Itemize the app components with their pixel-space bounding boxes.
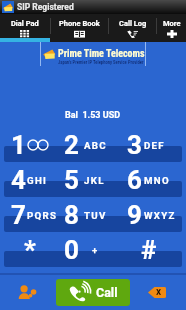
staticText: 5 xyxy=(64,165,79,195)
staticText: Call Log xyxy=(119,19,147,28)
button[interactable]: 4 xyxy=(0,162,62,197)
staticText: 6 xyxy=(127,165,142,195)
staticText: * xyxy=(24,235,36,265)
button[interactable]: Phone Book xyxy=(51,14,108,38)
button[interactable]: Delete xyxy=(144,281,170,303)
staticText: Japan's Premier IP Telephony Service Pro… xyxy=(58,60,144,65)
staticText: + xyxy=(92,245,99,256)
staticText: MNO xyxy=(144,175,170,186)
button[interactable]: 0 xyxy=(62,232,124,267)
staticText: JKL xyxy=(84,175,105,186)
staticText: Phone Book xyxy=(59,19,100,28)
staticText: TUV xyxy=(84,210,107,221)
staticText: Dial Pad xyxy=(11,19,39,28)
staticText: 4 xyxy=(11,165,26,195)
staticText: DEF xyxy=(144,140,165,151)
staticText: PQRS xyxy=(27,210,58,221)
button[interactable]: 7 xyxy=(0,197,62,232)
button[interactable]: Add contact xyxy=(14,281,40,303)
button[interactable]: 2 xyxy=(62,127,124,162)
staticText: Bal 1.53 USD xyxy=(65,110,121,121)
staticText: ABC xyxy=(84,140,107,151)
staticText: 7 xyxy=(11,200,26,230)
staticText: Prime Time Telecoms xyxy=(58,48,145,60)
staticText: # xyxy=(141,235,157,265)
button[interactable]: Call xyxy=(56,279,130,306)
staticText: Call xyxy=(96,285,118,300)
staticText: 3 xyxy=(127,130,142,160)
staticText: 1 xyxy=(11,130,26,160)
staticText: WXYZ xyxy=(144,210,176,221)
button[interactable]: 5 xyxy=(62,162,124,197)
staticText: GHI xyxy=(27,175,48,186)
button[interactable]: More xyxy=(157,14,186,38)
button[interactable]: 8 xyxy=(62,197,124,232)
staticText: x xyxy=(156,286,162,298)
button[interactable]: Dial Pad xyxy=(0,14,50,38)
staticText: More xyxy=(163,19,181,28)
staticText: 2 xyxy=(64,130,79,160)
staticText: 0 xyxy=(64,235,79,265)
staticText: 9 xyxy=(127,200,142,230)
staticText: SIP Registered xyxy=(17,2,74,12)
button[interactable]: # xyxy=(124,232,186,267)
button[interactable]: * xyxy=(0,232,62,267)
button[interactable]: 9 xyxy=(124,197,186,232)
button[interactable]: Call Log xyxy=(109,14,156,38)
button[interactable]: 6 xyxy=(124,162,186,197)
button[interactable]: 3 xyxy=(124,127,186,162)
button[interactable]: 1 xyxy=(0,127,62,162)
staticText: 8 xyxy=(64,200,79,230)
